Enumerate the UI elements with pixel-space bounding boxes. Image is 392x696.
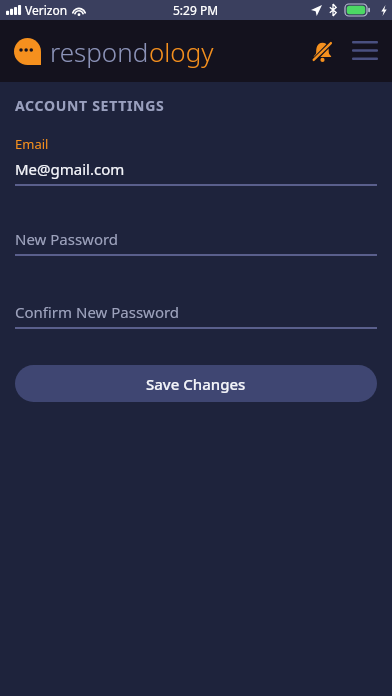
button[interactable]: Notifications muted (304, 33, 340, 69)
button[interactable]: respond (14, 34, 214, 69)
staticText: ology (149, 34, 214, 69)
button[interactable]: Email (15, 135, 377, 186)
staticText: Verizon (25, 2, 68, 18)
staticText: 5:29 PM (173, 2, 219, 18)
button[interactable]: Menu (346, 32, 384, 70)
staticText: Email (15, 135, 49, 153)
staticText: Me@gmail.com (15, 159, 125, 179)
staticText: respond (50, 34, 149, 69)
staticText: Save Changes (146, 374, 246, 394)
staticText: ACCOUNT SETTINGS (15, 96, 165, 115)
staticText: New Password (15, 229, 119, 249)
button[interactable]: Save Changes (15, 365, 377, 402)
button[interactable]: Confirm New Password (15, 302, 377, 329)
button[interactable]: New Password (15, 229, 377, 256)
staticText: Confirm New Password (15, 302, 180, 322)
